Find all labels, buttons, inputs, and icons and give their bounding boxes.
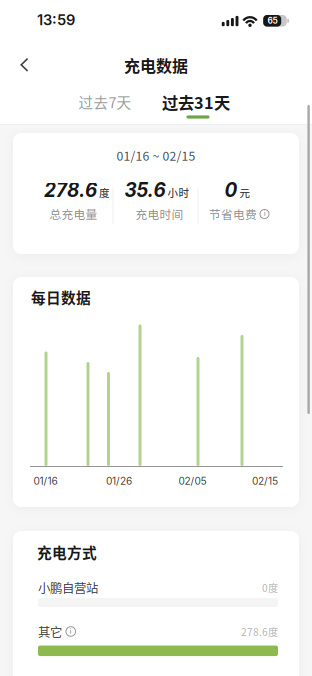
staticText: 02/05 (178, 475, 206, 487)
button[interactable]: 过去7天 (69, 88, 141, 116)
staticText: 元 (239, 185, 250, 200)
staticText: 0度 (262, 580, 278, 595)
staticText: 01/16 ~ 02/15 (116, 147, 195, 164)
staticText: 65 (267, 16, 277, 26)
staticText: 01/26 (106, 475, 132, 487)
staticText: 小鹏自营站 (38, 578, 98, 596)
staticText: 278.6度 (241, 624, 278, 639)
staticText: 小时 (167, 185, 189, 200)
staticText: 01/16 (33, 475, 57, 487)
staticText: 充电时间 (135, 205, 183, 222)
staticText: i (70, 628, 72, 635)
staticText: 度 (99, 185, 110, 200)
staticText: 278.6 (44, 178, 97, 201)
staticText: 充电数据 (124, 53, 188, 77)
staticText: 13:59 (37, 11, 75, 29)
staticText: 其它 (38, 622, 62, 640)
staticText: 35.6 (124, 178, 165, 201)
staticText: 节省电费 (209, 205, 257, 222)
button[interactable]: Info (66, 627, 75, 636)
staticText: 过去31天 (162, 90, 230, 114)
staticText: 充电方式 (37, 541, 97, 563)
staticText: 每日数据 (31, 286, 91, 308)
staticText: 过去7天 (78, 91, 131, 112)
staticText: 总充电量 (49, 205, 97, 222)
button[interactable]: 过去31天 (154, 88, 238, 116)
staticText: 0 (224, 178, 237, 201)
staticText: 02/15 (252, 475, 278, 487)
staticText: i (264, 211, 265, 217)
button[interactable]: 节省电费 (209, 205, 269, 222)
